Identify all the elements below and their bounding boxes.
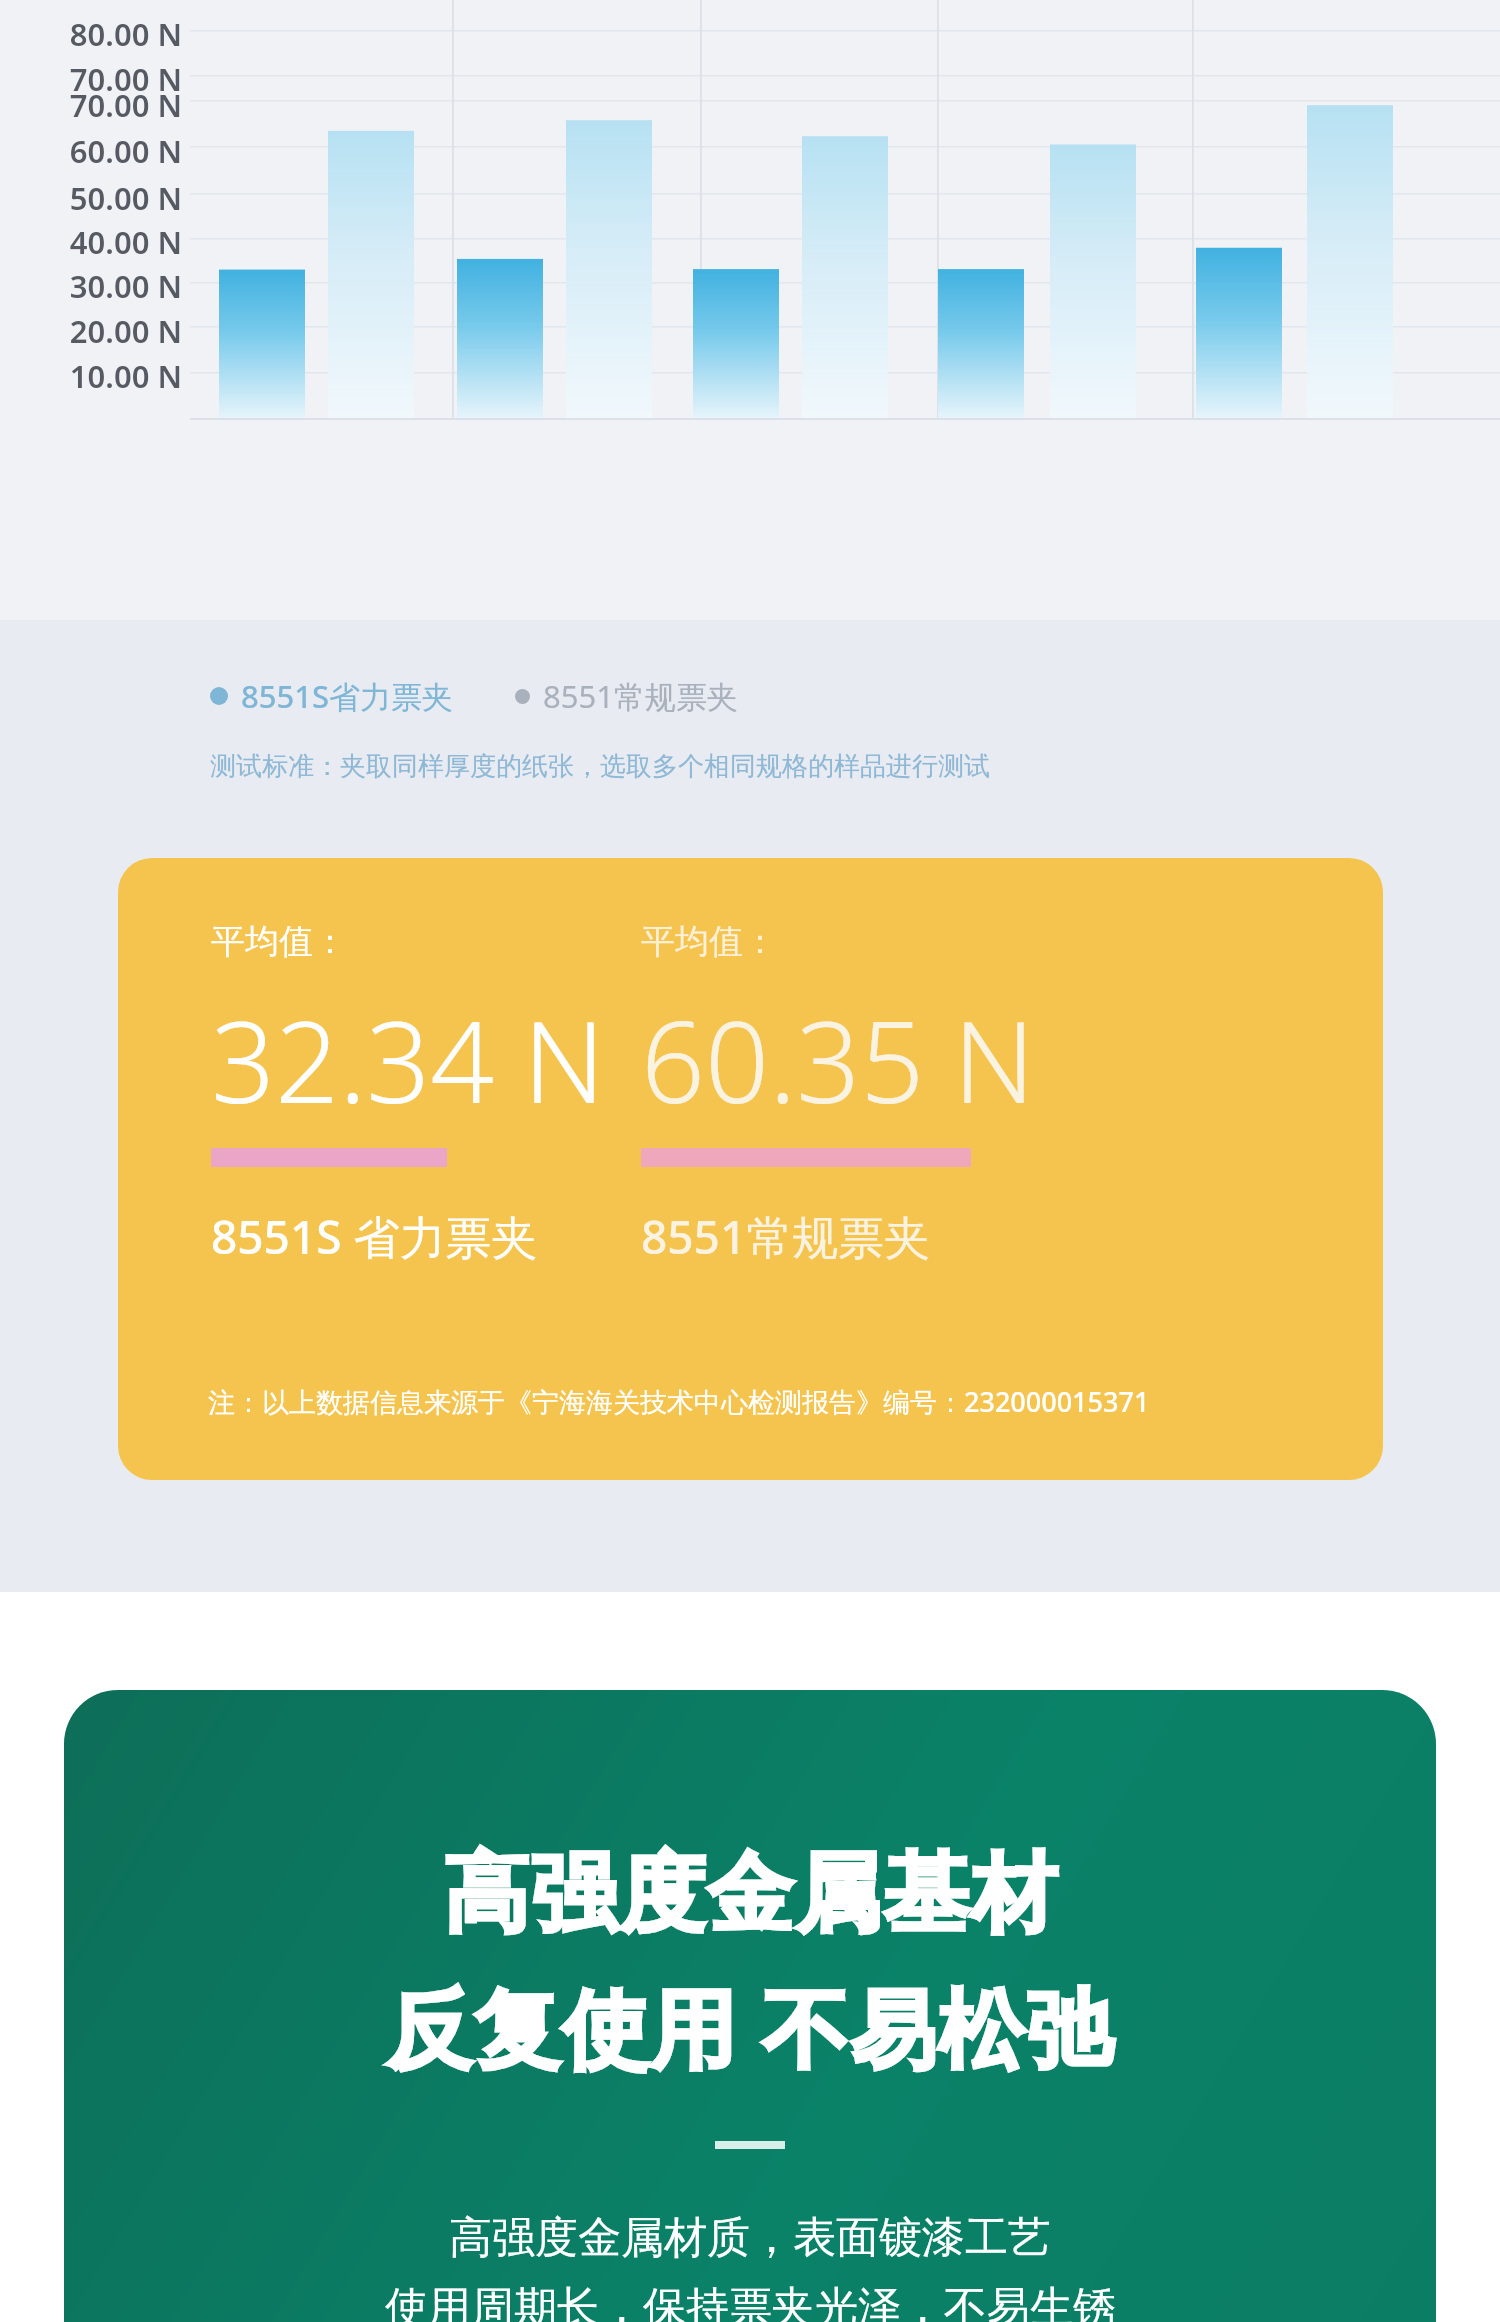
staticText: 注：以上数据信息来源于《宁海海关技术中心检测报告》编号：232000015371: [208, 1383, 1150, 1420]
staticText: 10.00 N: [0, 355, 182, 397]
staticText: 使用周期长，保持票夹光泽，不易生锈: [385, 2281, 1116, 2322]
staticText: 高强度金属材质，表面镀漆工艺: [449, 2211, 1051, 2265]
button[interactable]: 平均值：: [118, 858, 1383, 1480]
staticText: 8551S 省力票夹: [211, 1205, 538, 1268]
staticText: 50.00 N: [0, 177, 182, 219]
staticText: 40.00 N: [0, 221, 182, 263]
staticText: 70.00 N: [0, 58, 182, 100]
staticText: 高强度金属基材: [442, 1840, 1058, 1948]
staticText: 70.00 N: [0, 84, 182, 126]
staticText: 60.35 N: [641, 983, 1035, 1136]
staticText: 平均值：: [641, 920, 777, 963]
staticText: 8551S省力票夹: [241, 675, 453, 717]
staticText: 8551常规票夹: [641, 1205, 931, 1268]
button[interactable]: 高强度金属基材: [64, 1690, 1436, 2322]
staticText: 60.00 N: [0, 130, 182, 172]
staticText: 80.00 N: [0, 13, 182, 55]
staticText: 30.00 N: [0, 265, 182, 307]
staticText: 20.00 N: [0, 310, 182, 352]
staticText: 8551常规票夹: [543, 675, 738, 717]
staticText: 平均值：: [211, 920, 347, 963]
staticText: 32.34 N: [211, 983, 605, 1136]
staticText: 测试标准：夹取同样厚度的纸张，选取多个相同规格的样品进行测试: [210, 750, 990, 783]
staticText: 反复使用 不易松弛: [386, 1968, 1115, 2085]
